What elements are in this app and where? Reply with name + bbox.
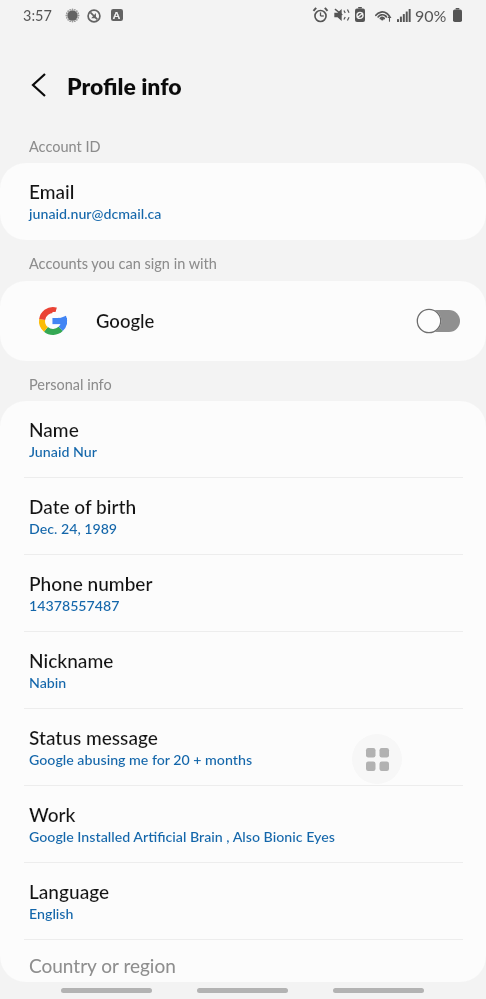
staticText: Date of birth — [29, 495, 137, 518]
staticText: Nickname — [29, 649, 114, 672]
staticText: Profile info — [67, 72, 182, 100]
staticText: 3:57 — [23, 7, 52, 24]
staticText: Account ID — [29, 138, 101, 155]
staticText: Phone number — [29, 572, 153, 595]
staticText: Email — [29, 180, 75, 203]
staticText: Language — [29, 880, 110, 903]
button[interactable]: Language — [0, 863, 486, 939]
staticText: 90% — [415, 6, 447, 25]
button[interactable]: Name — [0, 401, 486, 477]
staticText: 14378557487 — [29, 597, 120, 614]
staticText: Personal info — [29, 376, 112, 393]
staticText: Work — [29, 803, 76, 826]
staticText: Junaid Nur — [29, 443, 97, 460]
staticText: Google abusing me for 20 + months — [29, 751, 253, 768]
button[interactable]: Status message — [0, 709, 486, 785]
button[interactable]: Back — [20, 64, 58, 106]
staticText: A — [113, 9, 120, 21]
staticText: English — [29, 905, 74, 922]
button[interactable]: Google — [0, 281, 486, 361]
staticText: Google — [96, 310, 155, 332]
staticText: Country or region — [29, 954, 176, 977]
button[interactable]: Email — [0, 163, 486, 239]
button[interactable]: Phone number — [0, 555, 486, 631]
button[interactable]: Country or region — [0, 940, 486, 982]
staticText: junaid.nur@dcmail.ca — [29, 205, 162, 222]
button[interactable]: Insert sticker — [352, 734, 402, 784]
button[interactable]: Google sign-in toggle — [423, 301, 460, 341]
button[interactable]: Date of birth — [0, 478, 486, 554]
button[interactable]: Nickname — [0, 632, 486, 708]
staticText: Status message — [29, 726, 158, 749]
staticText: Dec. 24, 1989 — [29, 520, 118, 537]
staticText: Google Installed Artificial Brain , Also… — [29, 828, 335, 845]
staticText: Nabin — [29, 674, 67, 691]
button[interactable]: Work — [0, 786, 486, 862]
staticText: Accounts you can sign in with — [29, 255, 217, 272]
staticText: Name — [29, 418, 79, 441]
